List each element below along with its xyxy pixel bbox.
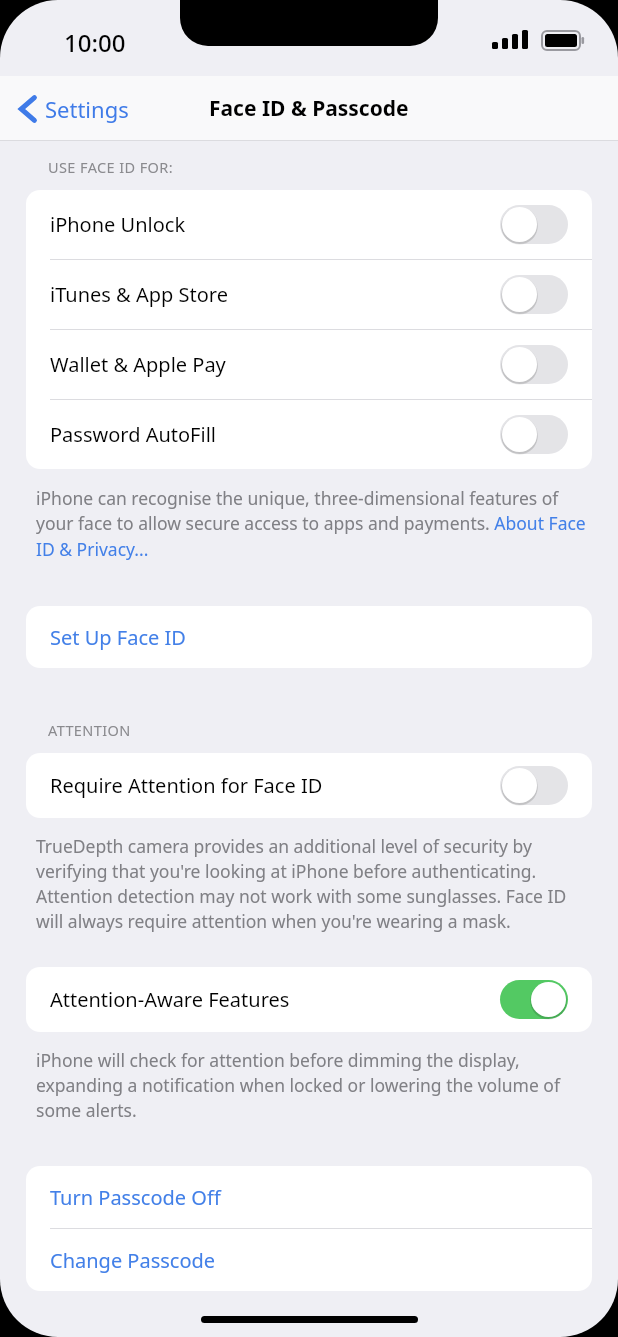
staticText: USE FACE ID FOR: <box>48 157 174 177</box>
button[interactable]: Back to Settings <box>12 88 139 130</box>
staticText: TrueDepth camera provides an additional … <box>36 834 586 933</box>
staticText: Face ID & Passcode <box>209 94 409 123</box>
button[interactable] <box>500 980 568 1019</box>
staticText: Attention-Aware Features <box>50 986 290 1013</box>
button[interactable] <box>500 345 568 384</box>
button[interactable]: Set Up Face ID <box>26 606 592 668</box>
staticText: Require Attention for Face ID <box>50 772 323 799</box>
staticText: 10:00 <box>64 26 126 59</box>
button[interactable] <box>500 205 568 244</box>
staticText: Set Up Face ID <box>50 624 186 651</box>
button[interactable] <box>500 275 568 314</box>
staticText: ATTENTION <box>48 720 131 740</box>
staticText: iTunes & App Store <box>50 281 228 308</box>
button[interactable]: Wallet & Apple Pay <box>26 330 592 399</box>
button[interactable]: Turn Passcode Off <box>26 1166 592 1228</box>
button[interactable]: Attention-Aware Features <box>26 967 592 1032</box>
staticText: iPhone Unlock <box>50 211 186 238</box>
staticText: iPhone will check for attention before d… <box>36 1048 586 1122</box>
button[interactable] <box>500 415 568 454</box>
staticText: iPhone can recognise the unique, three-d… <box>36 486 588 562</box>
button[interactable]: iTunes & App Store <box>26 260 592 329</box>
staticText: Password AutoFill <box>50 421 216 448</box>
button[interactable]: iPhone Unlock <box>26 190 592 259</box>
button[interactable]: Password AutoFill <box>26 400 592 469</box>
button[interactable]: Require Attention for Face ID <box>26 753 592 818</box>
button[interactable]: Change Passcode <box>26 1229 592 1291</box>
button[interactable] <box>500 766 568 805</box>
staticText: Wallet & Apple Pay <box>50 351 226 378</box>
staticText: Turn Passcode Off <box>50 1184 221 1211</box>
staticText: Settings <box>45 94 129 124</box>
staticText: Change Passcode <box>50 1247 216 1274</box>
